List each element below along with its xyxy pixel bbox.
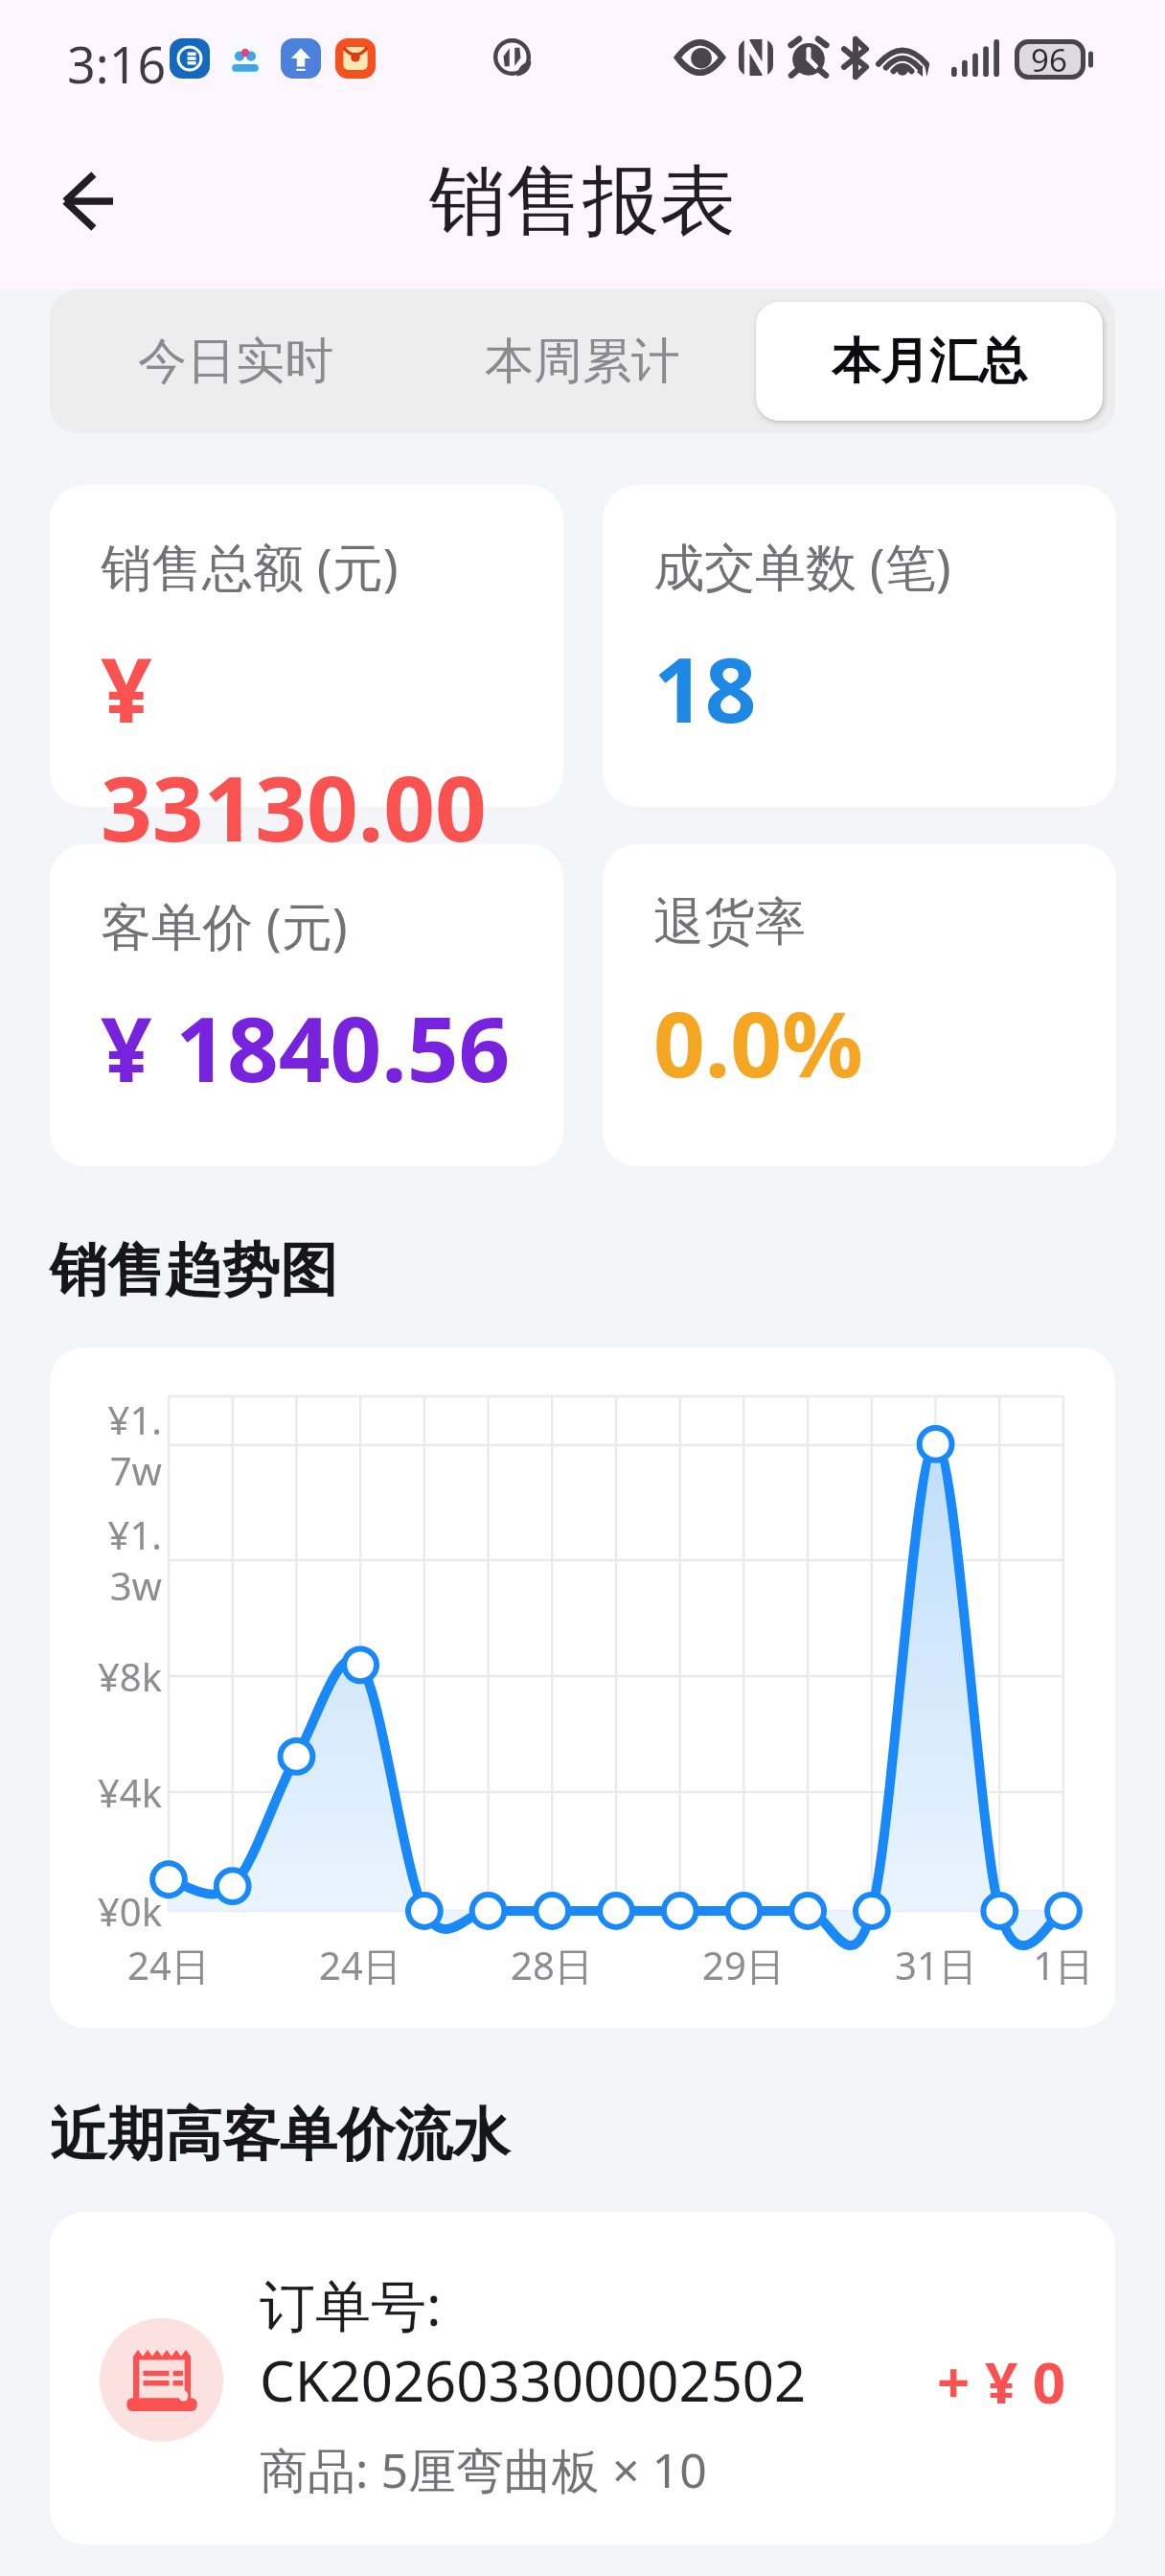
staticText: 成交单数 (笔) bbox=[653, 531, 951, 600]
staticText: 销售趋势图 bbox=[50, 1234, 337, 1307]
button[interactable] bbox=[603, 844, 1116, 1166]
button[interactable]: 订单号: bbox=[50, 2212, 1115, 2544]
staticText: 0.0% bbox=[653, 981, 863, 1104]
staticText: 28日 bbox=[475, 1939, 628, 1991]
staticText: 销售总额 (元) bbox=[101, 531, 399, 600]
staticText: 退货率 bbox=[653, 890, 806, 954]
staticText: ¥1.7w bbox=[89, 1393, 162, 1497]
button[interactable]: 本周累计 bbox=[409, 302, 756, 421]
staticText: ¥4k bbox=[89, 1766, 162, 1818]
staticText: 本周累计 bbox=[485, 331, 680, 392]
staticText: + ¥ 0 bbox=[937, 2342, 1066, 2421]
staticText: ¥ 1840.56 bbox=[101, 986, 511, 1109]
staticText: 29日 bbox=[667, 1939, 820, 1991]
button[interactable] bbox=[603, 485, 1116, 807]
staticText: ¥ 33130.00 bbox=[101, 627, 519, 868]
staticText: 18 bbox=[653, 627, 757, 749]
staticText: 近期高客单价流水 bbox=[50, 2099, 510, 2172]
button[interactable]: 本月汇总 bbox=[756, 302, 1103, 421]
staticText: 销售报表 bbox=[429, 153, 736, 250]
staticText: ¥8k bbox=[89, 1650, 162, 1702]
staticText: CK202603300002502 bbox=[260, 2342, 807, 2418]
staticText: 商品: 5厘弯曲板 × 10 bbox=[260, 2437, 707, 2502]
staticText: ¥0k bbox=[89, 1885, 162, 1937]
staticText: ¥1.3w bbox=[89, 1508, 162, 1612]
staticText: 31日 bbox=[859, 1939, 1013, 1991]
staticText: 24日 bbox=[92, 1939, 245, 1991]
staticText: 3:16 bbox=[67, 30, 167, 98]
button[interactable]: 今日实时 bbox=[62, 302, 409, 421]
staticText: 1日 bbox=[987, 1939, 1140, 1991]
button[interactable] bbox=[50, 485, 563, 807]
button[interactable] bbox=[50, 844, 563, 1166]
staticText: 本月汇总 bbox=[832, 331, 1027, 392]
staticText: 24日 bbox=[284, 1939, 437, 1991]
staticText: 客单价 (元) bbox=[101, 890, 348, 959]
button[interactable]: Back bbox=[33, 147, 142, 256]
staticText: 订单号: bbox=[260, 2266, 442, 2342]
staticText: 今日实时 bbox=[138, 331, 333, 392]
staticText: 96 bbox=[1031, 38, 1067, 81]
